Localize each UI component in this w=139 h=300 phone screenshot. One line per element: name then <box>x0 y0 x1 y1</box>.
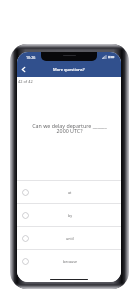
button[interactable]: until <box>17 227 121 249</box>
staticText: until <box>66 236 74 241</box>
button[interactable]: because <box>17 250 121 272</box>
staticText: 42 of 42 <box>18 79 33 84</box>
button[interactable]: Back <box>17 62 30 77</box>
staticText: Can we delay departure ______ 2000 UTC? <box>32 122 107 135</box>
button[interactable]: by <box>17 204 121 226</box>
staticText: by <box>68 213 72 218</box>
staticText: at <box>68 190 72 195</box>
button[interactable]: at <box>17 181 121 203</box>
staticText: 10:26 <box>26 55 36 60</box>
staticText: More questions? <box>53 67 85 72</box>
staticText: because <box>63 259 77 264</box>
